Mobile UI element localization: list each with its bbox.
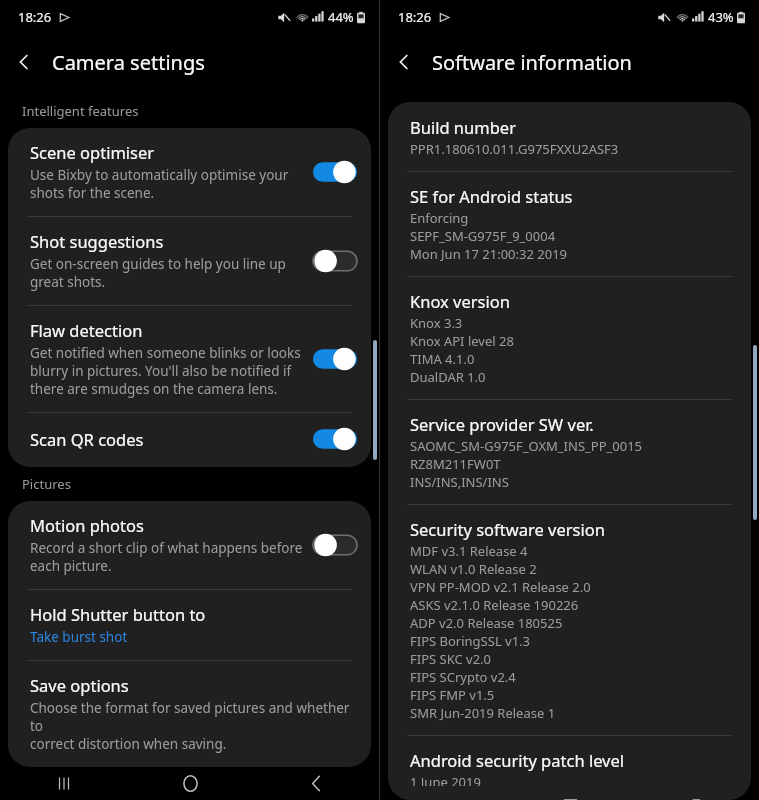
staticText: MDF v3.1 Release 4 [410, 542, 528, 560]
staticText: Pictures [22, 475, 71, 493]
staticText: INS/INS,INS/INS [410, 473, 509, 491]
staticText: 43% [708, 8, 734, 26]
staticText: Scan QR codes [30, 428, 144, 450]
staticText: Knox API level 28 [410, 332, 514, 350]
staticText: SAOMC_SM-G975F_OXM_INS_PP_0015 [410, 437, 643, 455]
button[interactable]: Toggle on [313, 427, 357, 451]
button[interactable]: Service provider SW ver. [388, 400, 751, 504]
button[interactable]: Back [380, 38, 428, 86]
staticText: Scene optimiser [30, 141, 155, 163]
button[interactable]: Hold Shutter button to [8, 590, 371, 660]
staticText: TIMA 4.1.0 [410, 350, 475, 368]
button[interactable]: Android security patch level [388, 736, 751, 800]
staticText: 18:26 [398, 8, 432, 26]
staticText: DualDAR 1.0 [410, 368, 486, 386]
button[interactable]: Recents [0, 767, 127, 800]
button[interactable]: Toggle off [313, 249, 357, 273]
staticText: Build number [410, 116, 516, 138]
staticText: Get notified when someone blinks or look… [30, 344, 301, 398]
staticText: 44% [328, 8, 354, 26]
staticText: SEPF_SM-G975F_9_0004 [410, 227, 556, 245]
staticText: Choose the format for saved pictures and… [30, 699, 357, 753]
staticText: FIPS SCrypto v2.4 [410, 668, 516, 686]
button[interactable]: Security software version [388, 505, 751, 735]
staticText: Knox 3.3 [410, 314, 463, 332]
staticText: FIPS SKC v2.0 [410, 650, 492, 668]
staticText: SE for Android status [410, 185, 573, 207]
staticText: Flaw detection [30, 319, 143, 341]
staticText: Shot suggestions [30, 230, 164, 252]
button[interactable]: Toggle off [313, 533, 357, 557]
button[interactable]: Back [0, 38, 48, 86]
staticText: Enforcing [410, 209, 469, 227]
staticText: Save options [30, 674, 129, 696]
button[interactable]: SE for Android status [388, 172, 751, 276]
button[interactable]: Back [253, 767, 379, 800]
button[interactable]: Shot suggestions [8, 217, 371, 305]
staticText: 18:26 [18, 8, 52, 26]
staticText: Use Bixby to automatically optimise your… [30, 166, 289, 202]
staticText: ADP v2.0 Release 180525 [410, 614, 563, 632]
button[interactable]: Save options [8, 661, 371, 767]
staticText: FIPS FMP v1.5 [410, 686, 495, 704]
button[interactable]: Toggle on [313, 347, 357, 371]
button[interactable]: Motion photos [8, 501, 371, 589]
staticText: Mon Jun 17 21:00:32 2019 [410, 245, 568, 263]
staticText: Take burst shot [30, 628, 128, 646]
staticText: Knox version [410, 290, 510, 312]
button[interactable]: Knox version [388, 277, 751, 399]
staticText: Intelligent features [22, 102, 139, 120]
staticText: Motion photos [30, 514, 144, 536]
staticText: ASKS v2.1.0 Release 190226 [410, 596, 579, 614]
button[interactable]: Build number [388, 102, 751, 171]
staticText: RZ8M211FW0T [410, 455, 501, 473]
button[interactable]: Flaw detection [8, 306, 371, 412]
staticText: PPR1.180610.011.G975FXXU2ASF3 [410, 140, 619, 158]
staticText: Android security patch level [410, 749, 625, 771]
button[interactable]: Home [127, 767, 253, 800]
button[interactable]: Scan QR codes [8, 413, 371, 467]
staticText: Record a short clip of what happens befo… [30, 539, 303, 575]
staticText: FIPS BoringSSL v1.3 [410, 632, 531, 650]
staticText: 1 June 2019 [410, 773, 481, 786]
staticText: Software information [432, 49, 632, 76]
staticText: Camera settings [52, 49, 205, 76]
button[interactable]: Scene optimiser [8, 128, 371, 216]
staticText: SMR Jun-2019 Release 1 [410, 704, 556, 722]
staticText: Security software version [410, 518, 605, 540]
staticText: Get on-screen guides to help you line up… [30, 255, 286, 291]
staticText: VPN PP-MOD v2.1 Release 2.0 [410, 578, 591, 596]
button[interactable]: Toggle on [313, 160, 357, 184]
staticText: WLAN v1.0 Release 2 [410, 560, 537, 578]
staticText: Service provider SW ver. [410, 413, 594, 435]
staticText: Hold Shutter button to [30, 603, 206, 625]
